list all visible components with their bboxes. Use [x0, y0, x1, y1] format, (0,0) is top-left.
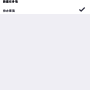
staticText: 待办事项 — [3, 9, 15, 13]
staticText: 新建任务项 — [3, 0, 18, 3]
staticText: 待办事项 — [3, 9, 15, 13]
button[interactable]: Done — [77, 5, 87, 14]
staticText: 新建任务项 — [3, 0, 18, 3]
